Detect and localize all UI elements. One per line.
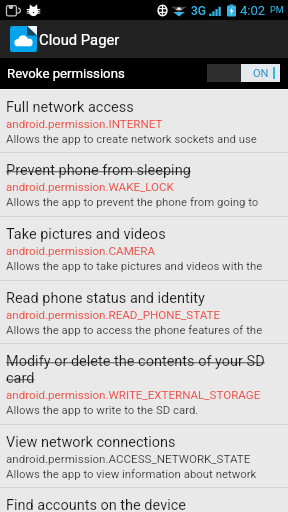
button[interactable]: Modify or delete the contents of your SD… [0,344,288,424]
staticText: android.permission.CAMERA [6,244,156,258]
staticText: android.permission.WRITE_EXTERNAL_STORAG… [6,388,261,402]
staticText: Revoke permissions [7,66,125,81]
button[interactable]: Revoke permissions [0,58,288,89]
staticText: Cloud Pager [39,31,120,48]
button[interactable]: Cloud Pager app icon [0,20,288,58]
other: Cloud Pager app icon [10,26,37,52]
staticText: android.permission.READ_PHONE_STATE [6,308,221,322]
staticText: View network connections [6,434,176,451]
staticText: 3G [191,4,206,18]
button[interactable]: Revoke permissions switch, on [207,64,280,82]
staticText: Allows the app to view information about… [6,467,257,480]
staticText: Allows the app to write to the SD card. [6,403,199,416]
staticText: ON [253,67,269,80]
button[interactable]: Take pictures and videos [0,217,288,280]
button[interactable]: Read phone status and identity [0,281,288,343]
staticText: Allows the app to take pictures and vide… [6,259,263,272]
staticText: 4:02 [240,3,266,18]
staticText: android.permission.WAKE_LOCK [6,180,174,194]
staticText: Prevent phone from sleeping [6,162,191,179]
staticText: Read phone status and identity [6,290,205,307]
staticText: Allows the app to create network sockets… [6,132,257,145]
button[interactable]: Prevent phone from sleeping [0,153,288,216]
staticText: Allows the app to access the phone featu… [6,323,263,336]
button[interactable]: Full network access [0,90,288,152]
staticText: Allows the app to prevent the phone from… [6,195,259,208]
button[interactable]: View network connections [0,425,288,487]
staticText: android.permission.INTERNET [6,117,163,131]
staticText: Take pictures and videos [6,226,166,243]
staticText: PM [270,5,284,16]
staticText: Full network access [6,99,134,116]
staticText: Modify or delete the contents of your SD… [6,353,282,387]
staticText: Find accounts on the device [6,497,186,512]
staticText: android.permission.ACCESS_NETWORK_STATE [6,452,251,466]
button[interactable]: Find accounts on the device [0,488,288,512]
